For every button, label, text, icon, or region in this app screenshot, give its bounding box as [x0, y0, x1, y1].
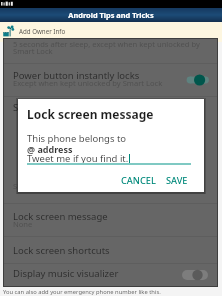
button[interactable]: SAVE	[162, 172, 192, 189]
button[interactable]: Display music visualizer toggle	[182, 268, 208, 282]
staticText: 5 seconds after sleep, except when kept …	[13, 39, 200, 49]
staticText: This phone belongs to	[27, 132, 127, 145]
staticText: Lock screen message	[13, 210, 108, 223]
button[interactable]: Power button instantly locks toggle	[186, 74, 208, 86]
button[interactable]: Lock screen shortcuts	[4, 237, 217, 263]
button[interactable]: Power button instantly locks	[4, 64, 217, 96]
staticText: Add Owner Info	[19, 27, 66, 35]
staticText: Lock screen shortcuts	[13, 244, 110, 257]
button[interactable]: CANCEL	[117, 172, 160, 189]
button[interactable]: Lock screen message	[4, 204, 217, 236]
staticText: Except when kept unlocked by Smart Lock	[13, 78, 163, 88]
button[interactable]: Add Owner Info	[0, 23, 222, 38]
staticText: Android Tips and Tricks	[68, 10, 154, 20]
staticText: CANCEL	[121, 174, 156, 187]
staticText: Lock screen message	[27, 106, 154, 122]
staticText: You can also add your emergency phone nu…	[3, 288, 161, 296]
staticText: SAVE	[166, 174, 188, 187]
staticText: Show lockdown option	[13, 101, 114, 114]
staticText: @ address	[27, 143, 73, 155]
staticText: Display music visualizer	[13, 267, 119, 280]
staticText: Tweet me if you find it.	[27, 152, 129, 165]
staticText: Smart Lock	[13, 46, 53, 56]
staticText: Power button instantly locks	[13, 69, 140, 82]
staticText: Show and strengthen	[13, 181, 90, 191]
staticText: None	[13, 219, 33, 229]
button[interactable]: Display music visualizer	[4, 264, 217, 286]
